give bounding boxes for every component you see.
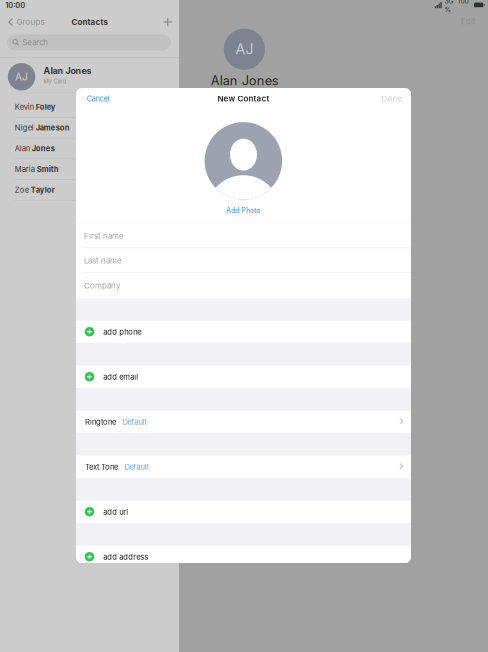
button[interactable]: Zoe: [0, 180, 179, 201]
staticText: Ringtone: [85, 417, 116, 426]
staticText: add phone: [103, 327, 141, 336]
staticText: Edit: [461, 17, 476, 26]
staticText: Jones: [32, 144, 55, 153]
staticText: Nigel: [15, 123, 36, 132]
button[interactable]: Add contact: [162, 17, 173, 27]
staticText: Foley: [36, 102, 56, 112]
staticText: Add Photo: [226, 206, 260, 215]
staticText: Done: [382, 94, 403, 103]
staticText: Alan Jones: [211, 73, 279, 88]
staticText: AJ: [15, 71, 28, 83]
staticText: Kevin: [15, 102, 36, 112]
button[interactable]: add email: [76, 366, 411, 388]
staticText: Search: [22, 38, 48, 47]
staticText: Groups: [17, 17, 45, 27]
staticText: add email: [103, 372, 138, 381]
staticText: add url: [103, 507, 128, 516]
staticText: Default: [123, 417, 147, 426]
button[interactable]: Nigel: [0, 118, 179, 138]
button[interactable]: Search: [7, 34, 171, 50]
button[interactable]: add url: [76, 501, 411, 523]
button[interactable]: add address: [76, 546, 411, 568]
staticText: 10:00: [5, 1, 25, 10]
button[interactable]: Add Photo: [205, 122, 282, 215]
button[interactable]: Alan: [0, 138, 179, 159]
staticText: New Contact: [217, 94, 269, 104]
button[interactable]: Edit: [460, 17, 477, 26]
staticText: Zoe: [15, 185, 31, 195]
staticText: Cancel: [87, 94, 110, 103]
button[interactable]: Groups: [8, 17, 45, 26]
button[interactable]: Cancel: [87, 94, 111, 103]
staticText: AJ: [235, 41, 253, 58]
staticText: First name: [84, 231, 124, 241]
staticText: Last name: [84, 256, 122, 265]
button[interactable]: Maria: [0, 159, 179, 180]
button[interactable]: add phone: [76, 321, 411, 343]
staticText: My Card: [44, 78, 67, 85]
button[interactable]: Kevin: [0, 97, 179, 118]
button[interactable]: Company: [76, 273, 411, 298]
staticText: Alan: [15, 144, 32, 153]
staticText: Contacts: [71, 17, 107, 27]
button[interactable]: Last name: [76, 248, 411, 273]
button[interactable]: Ringtone: [76, 411, 411, 433]
staticText: add address: [103, 552, 148, 561]
button[interactable]: Text Tone: [76, 456, 411, 478]
staticText: Alan Jones: [44, 65, 92, 76]
staticText: Text Tone: [85, 462, 118, 471]
staticText: Default: [125, 462, 149, 471]
staticText: Smith: [37, 165, 59, 174]
staticText: Taylor: [31, 185, 55, 195]
staticText: Company: [84, 281, 120, 290]
button[interactable]: AJ: [0, 58, 179, 93]
button[interactable]: Done: [382, 94, 403, 103]
staticText: Jameson: [36, 123, 70, 132]
staticText: Maria: [15, 165, 37, 174]
staticText: 3G 100 %: [444, 0, 468, 13]
button[interactable]: First name: [76, 223, 411, 248]
